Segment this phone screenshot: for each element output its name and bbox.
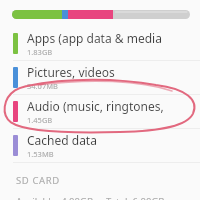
staticText: 1.83GB	[27, 47, 53, 57]
staticText: 1.45GB	[27, 115, 53, 125]
button[interactable]: Pictures, videos	[0, 61, 200, 94]
button[interactable]: Apps (app data & media content)	[0, 27, 200, 60]
button[interactable]: Cached data	[0, 129, 200, 162]
staticText: Apps (app data & media content)	[27, 30, 194, 46]
staticText: Total: 6.00GB	[106, 195, 165, 200]
staticText: Available: 4.00GB	[16, 195, 94, 200]
staticText: Pictures, videos	[27, 64, 115, 80]
staticText: SD CARD	[16, 174, 60, 187]
button[interactable]: Audio (music, ringtones, podcasts,	[0, 95, 200, 128]
staticText: Cached data	[27, 132, 97, 148]
staticText: 1.53MB	[27, 149, 54, 159]
staticText: 34.07MB	[27, 81, 58, 91]
staticText: Audio (music, ringtones, podcasts,	[27, 98, 194, 114]
